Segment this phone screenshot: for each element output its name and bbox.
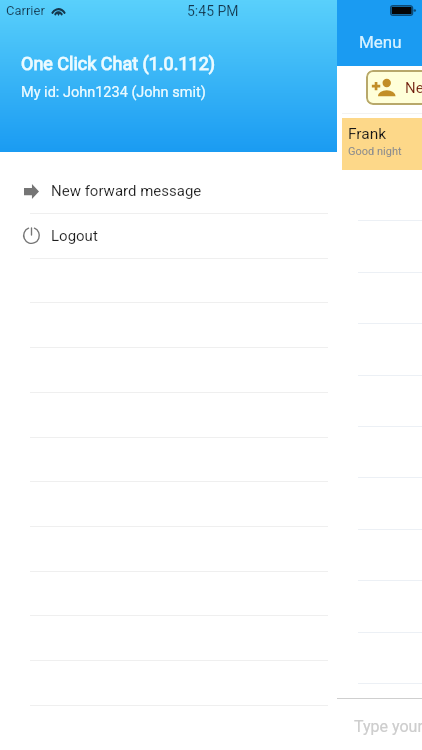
button[interactable]: Frank: [342, 118, 422, 170]
staticText: 5:45 PM: [187, 3, 239, 19]
staticText: New forward message: [51, 182, 202, 200]
button[interactable]: Type your message: [337, 700, 422, 750]
staticText: My id: John1234 (John smit): [21, 84, 206, 101]
staticText: Logout: [51, 227, 98, 245]
button[interactable]: New forward message: [0, 168, 337, 213]
button[interactable]: Logout: [0, 213, 337, 258]
button[interactable]: Menu: [359, 32, 402, 52]
staticText: Frank: [348, 125, 387, 143]
staticText: New Chat: [405, 79, 422, 97]
staticText: One Click Chat (1.0.112): [21, 53, 216, 74]
other: Wifi: [51, 5, 66, 16]
staticText: Good night: [348, 145, 402, 158]
staticText: Type your message: [354, 717, 422, 736]
staticText: Carrier: [6, 3, 45, 18]
button[interactable]: [0, 571, 337, 616]
button[interactable]: [0, 437, 337, 482]
other: New chat: [372, 79, 396, 96]
button[interactable]: [0, 258, 337, 303]
button[interactable]: New chat: [366, 70, 422, 105]
